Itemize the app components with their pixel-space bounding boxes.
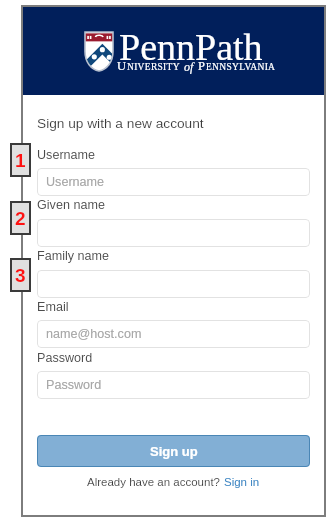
staticText: Password — [46, 378, 102, 392]
button[interactable]: Sign up — [37, 435, 310, 467]
staticText: Password — [37, 351, 93, 365]
staticText: Sign in — [224, 476, 260, 489]
staticText: P — [198, 59, 206, 73]
staticText: Given name — [37, 198, 105, 212]
staticText: Family name — [37, 249, 110, 263]
button[interactable]: name@host.com — [37, 320, 310, 348]
button[interactable] — [37, 219, 310, 247]
staticText: Already have an account? — [87, 476, 224, 489]
staticText: 2 — [15, 208, 26, 229]
staticText: U — [117, 59, 127, 73]
staticText: 1 — [15, 150, 26, 171]
staticText: Username — [46, 175, 105, 189]
button[interactable] — [37, 270, 310, 298]
button[interactable]: Password — [37, 371, 310, 399]
button[interactable]: Username — [37, 168, 310, 196]
staticText: PennPath — [119, 26, 263, 68]
staticText: 3 — [15, 265, 26, 286]
staticText: ENNSYLVANIA — [206, 62, 276, 73]
staticText: name@host.com — [46, 327, 142, 341]
staticText: Sign up with a new account — [37, 116, 204, 131]
staticText: of — [184, 60, 194, 73]
staticText: NIVERSITY — [127, 62, 180, 73]
button[interactable]: Sign in — [224, 476, 260, 489]
staticText: Username — [37, 148, 96, 162]
staticText: Sign up — [150, 444, 198, 459]
staticText: Email — [37, 300, 69, 314]
